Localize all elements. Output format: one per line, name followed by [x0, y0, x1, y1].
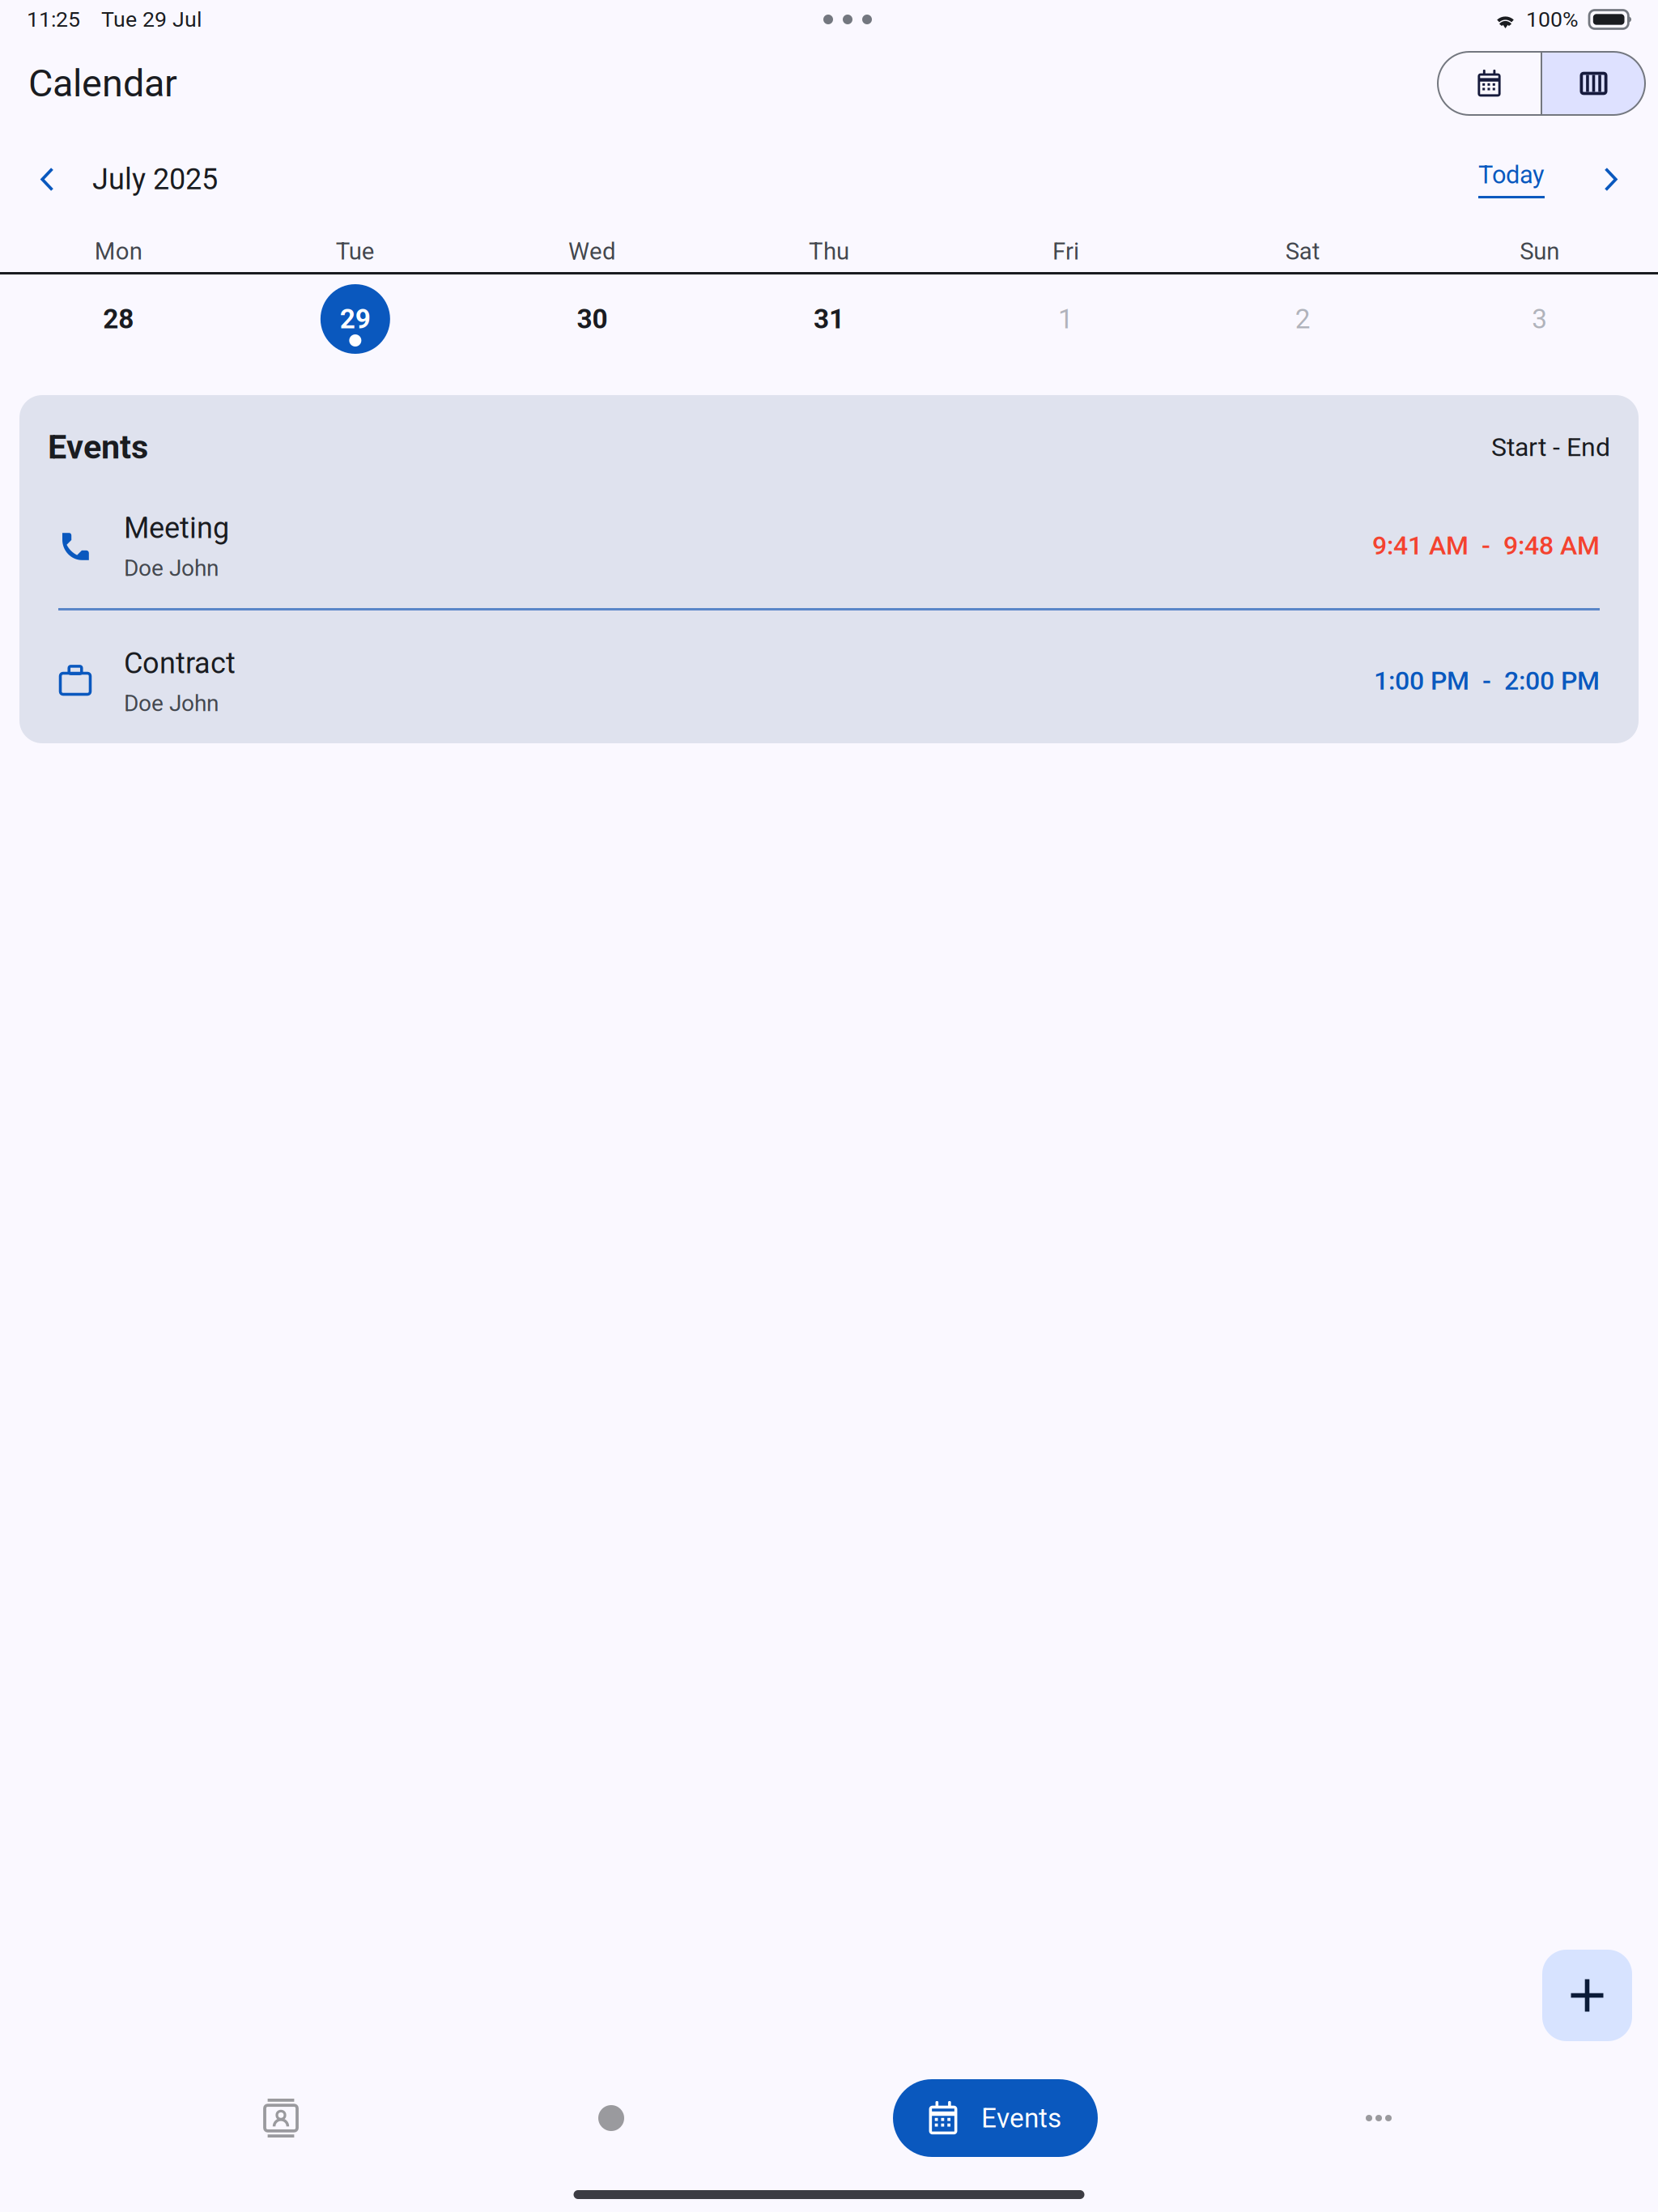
staticText: Thu [809, 237, 849, 265]
staticText: 2 [1295, 303, 1310, 335]
button[interactable]: Next month [1585, 154, 1635, 204]
button[interactable]: Contract [19, 610, 1639, 743]
button[interactable]: Add event [1542, 1950, 1632, 2041]
staticText: Fri [1053, 237, 1079, 265]
staticText: Start - End [1491, 432, 1610, 462]
staticText: 3 [1532, 303, 1547, 335]
staticText: July 2025 [92, 162, 218, 196]
staticText: Contract [124, 646, 236, 680]
button[interactable]: Meeting [19, 475, 1639, 608]
staticText: Sat [1285, 237, 1320, 265]
staticText: 1 [1058, 303, 1074, 335]
button[interactable]: Home [572, 2079, 650, 2157]
button[interactable]: More [1340, 2079, 1418, 2157]
button[interactable]: 30 [474, 274, 711, 364]
button[interactable]: Today [1478, 160, 1545, 198]
staticText: 30 [577, 303, 608, 335]
staticText: 28 [103, 303, 134, 335]
staticText: 29 [340, 303, 371, 335]
staticText: 100% [1526, 7, 1579, 32]
staticText: Events [48, 428, 148, 467]
staticText: Calendar [28, 61, 177, 106]
staticText: Sun [1520, 237, 1559, 265]
button[interactable]: 28 [0, 274, 237, 364]
button[interactable]: Events [893, 2079, 1098, 2157]
staticText: Wed [568, 237, 616, 265]
staticText: 1:00 PM - 2:00 PM [1374, 666, 1600, 696]
button[interactable]: 2 [1184, 274, 1421, 364]
button[interactable]: 1 [947, 274, 1184, 364]
staticText: 9:41 AM - 9:48 AM [1372, 530, 1600, 561]
staticText: Tue [336, 237, 375, 265]
button[interactable]: 31 [711, 274, 947, 364]
button[interactable]: Week view [1542, 52, 1645, 115]
button[interactable]: 3 [1421, 274, 1658, 364]
staticText: 31 [814, 303, 844, 335]
button[interactable]: 29 [237, 274, 474, 364]
staticText: Mon [95, 237, 142, 265]
staticText: 11:25 [27, 7, 80, 32]
button[interactable]: Previous month [23, 154, 73, 204]
staticText: Doe John [124, 555, 219, 581]
staticText: Tue 29 Jul [101, 7, 202, 32]
staticText: Meeting [124, 511, 229, 545]
staticText: Today [1478, 160, 1545, 189]
button[interactable]: Month view [1438, 52, 1541, 115]
staticText: Doe John [124, 690, 219, 717]
staticText: Events [981, 2102, 1061, 2134]
button[interactable]: Contacts [242, 2079, 320, 2157]
